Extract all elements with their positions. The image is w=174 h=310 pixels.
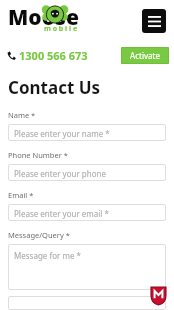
button[interactable]: Please enter your email * [8, 204, 166, 221]
button[interactable]: Activate [121, 47, 169, 64]
staticText: Moose [8, 3, 79, 26]
button[interactable]: 1300 566 673 [7, 48, 88, 63]
button[interactable]: Please enter your name * [8, 124, 166, 141]
staticText: Please enter your phone [14, 168, 106, 179]
staticText: Please enter your email * [14, 208, 109, 219]
staticText: Phone Number * [8, 150, 68, 160]
staticText: Please enter your name * [14, 128, 110, 139]
staticText: Message for me * [14, 250, 81, 261]
button[interactable]: Please enter your phone [8, 164, 166, 181]
button[interactable]: Moose [8, 3, 102, 39]
staticText: Message/Query * [8, 230, 70, 240]
button[interactable]: Message for me * [8, 244, 166, 290]
staticText: 1300 566 673 [19, 48, 88, 63]
button[interactable]: McAfee Secure [150, 285, 167, 305]
staticText: Contact Us [8, 76, 101, 99]
staticText: Email * [8, 190, 34, 200]
staticText: m o b i l e [44, 24, 78, 34]
staticText: Activate [130, 50, 160, 61]
button[interactable] [8, 296, 166, 310]
button[interactable]: Open menu [142, 9, 166, 33]
staticText: Name * [8, 110, 36, 120]
